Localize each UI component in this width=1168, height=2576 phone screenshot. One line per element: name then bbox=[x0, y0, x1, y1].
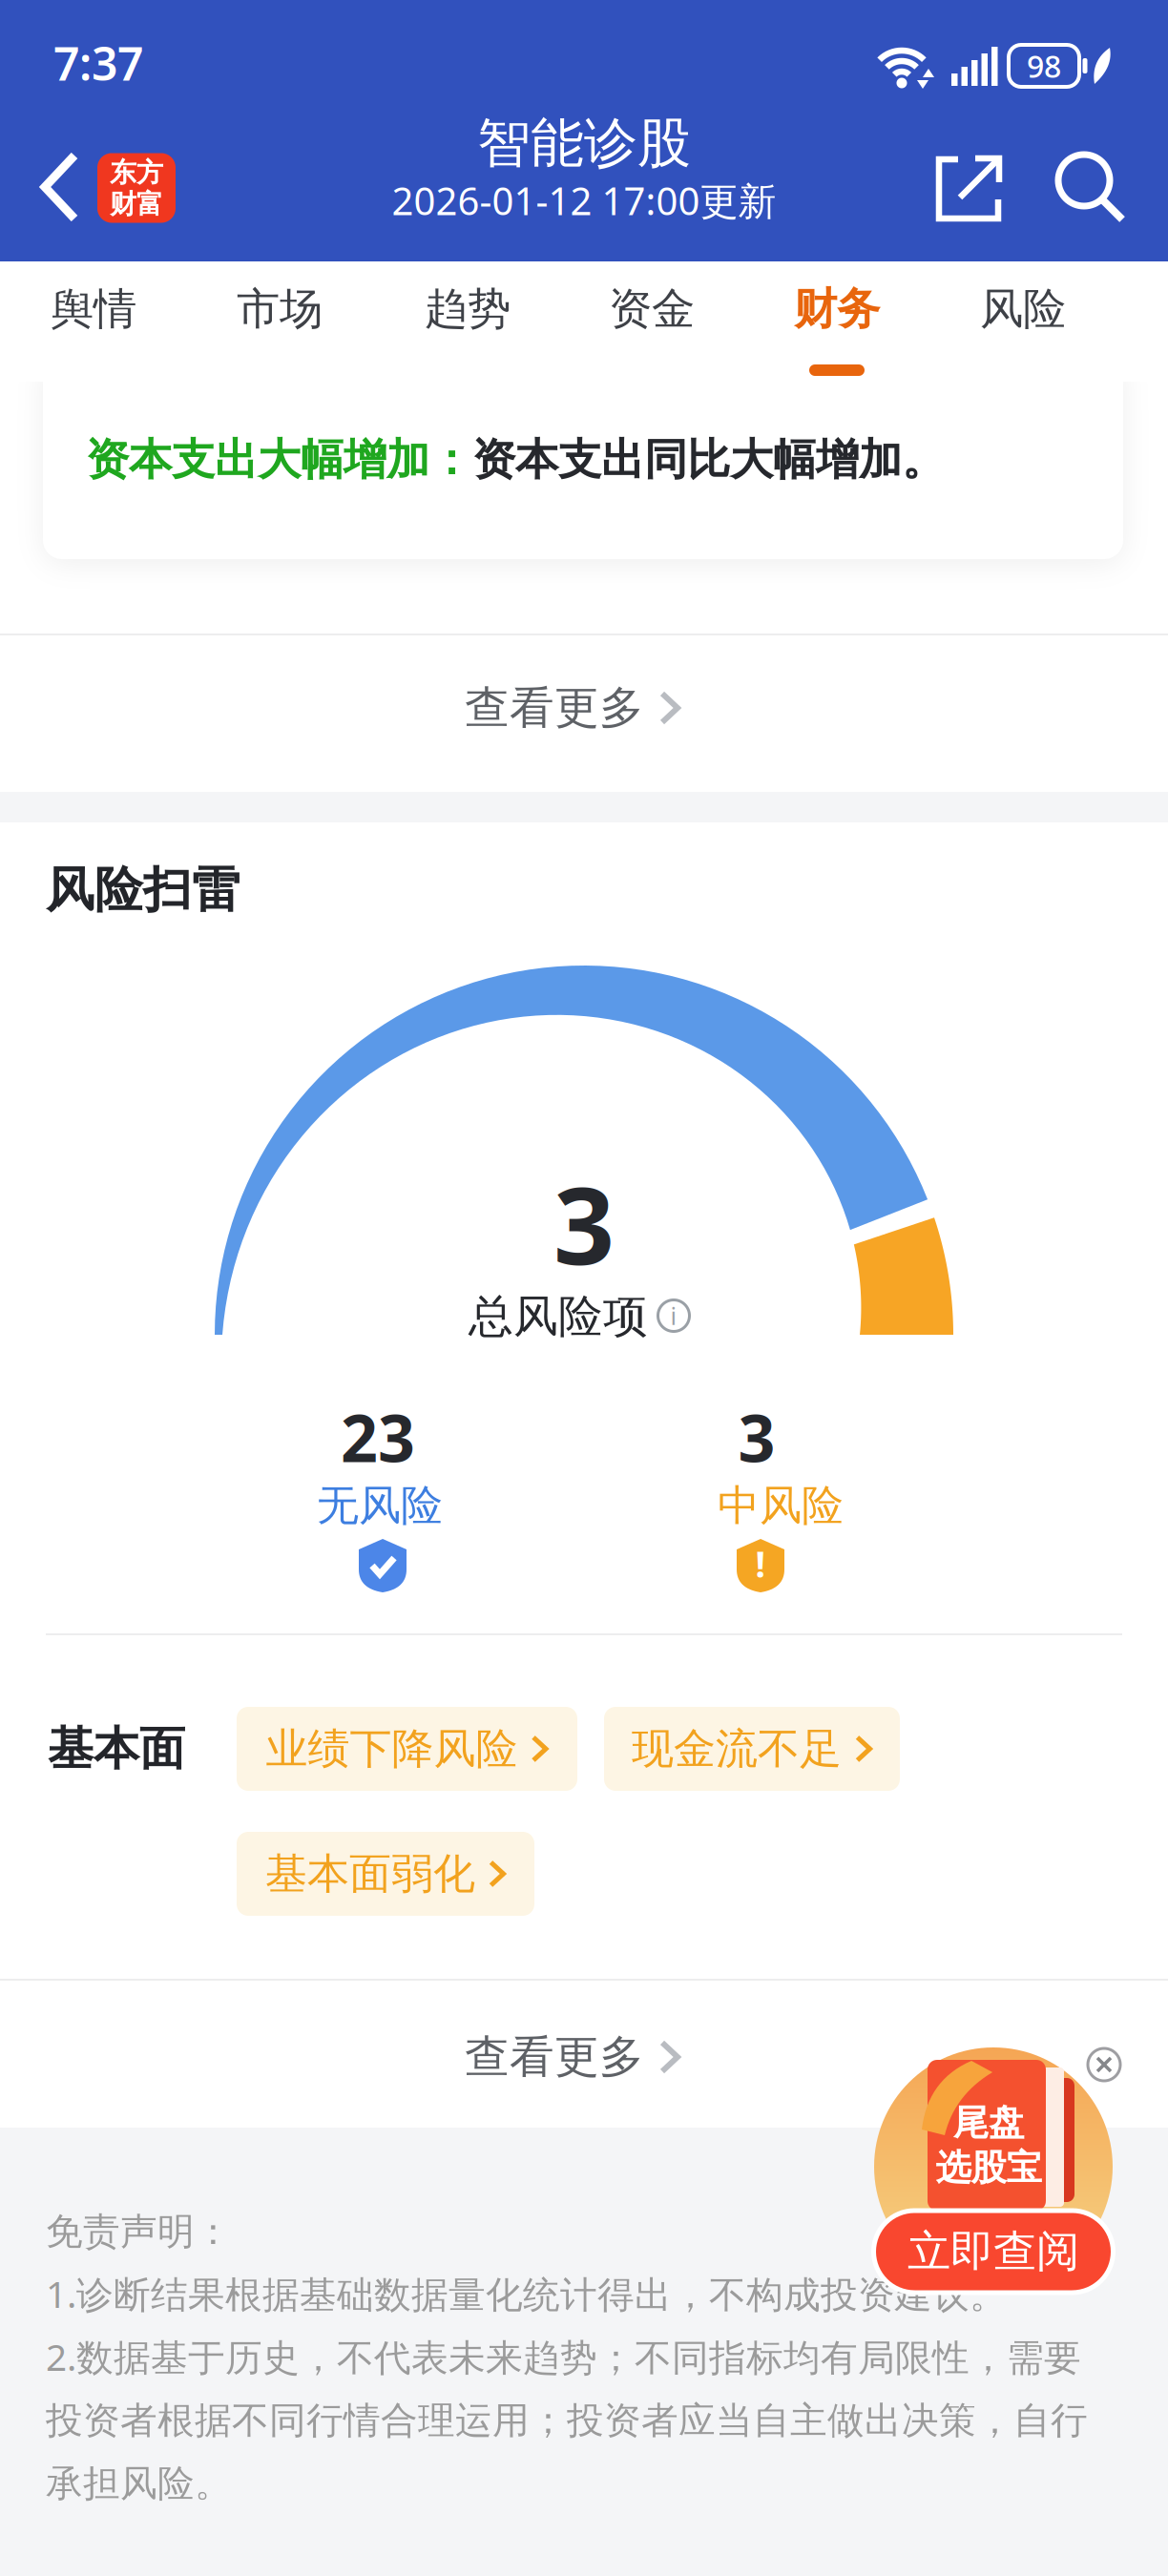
staticText: 选股宝 bbox=[936, 2146, 1042, 2190]
button[interactable]: 查看更多 bbox=[465, 2000, 680, 2114]
staticText: 资金 bbox=[609, 283, 695, 336]
button[interactable]: 基本面弱化 bbox=[237, 1832, 534, 1916]
staticText: 业绩下降风险 bbox=[266, 1723, 518, 1775]
button[interactable]: 市场 bbox=[203, 252, 356, 366]
button[interactable]: 总风险项说明 bbox=[657, 1299, 690, 1332]
button[interactable]: 东方财富 bbox=[97, 153, 176, 223]
staticText: 3 bbox=[738, 1394, 775, 1480]
button[interactable]: 立即查阅 bbox=[874, 2211, 1113, 2293]
button[interactable]: 舆情 bbox=[17, 252, 170, 366]
button[interactable]: 现金流不足 bbox=[604, 1707, 900, 1791]
staticText: 承担风险。 bbox=[46, 2461, 232, 2506]
button[interactable]: Share bbox=[937, 156, 1002, 221]
staticText: 资本支出同比大幅增加。 bbox=[472, 433, 945, 486]
button[interactable]: Back bbox=[42, 154, 78, 220]
staticText: 3 bbox=[553, 1152, 615, 1294]
staticText: 7:37 bbox=[53, 33, 143, 93]
button[interactable]: Search bbox=[1054, 151, 1127, 223]
staticText: 财务 bbox=[794, 283, 880, 336]
staticText: 中风险 bbox=[718, 1480, 844, 1531]
staticText: 立即查阅 bbox=[907, 2225, 1079, 2278]
staticText: 98 bbox=[1027, 46, 1061, 86]
staticText: 2026-01-12 17:00更新 bbox=[392, 175, 776, 226]
staticText: 基本面 bbox=[48, 1721, 185, 1777]
staticText: 1.诊断结果根据基础数据量化统计得出，不构成投资建议。 bbox=[46, 2269, 1007, 2318]
staticText: 基本面弱化 bbox=[265, 1848, 475, 1900]
staticText: 23 bbox=[341, 1394, 415, 1480]
staticText: 资本支出大幅增加： bbox=[86, 433, 472, 486]
button[interactable]: 业绩下降风险 bbox=[237, 1707, 577, 1791]
staticText: 2.数据基于历史，不代表未来趋势；不同指标均有局限性，需要 bbox=[46, 2332, 1081, 2381]
staticText: 风险扫雷 bbox=[46, 860, 240, 920]
button[interactable]: 财务 bbox=[761, 252, 913, 366]
staticText: ! bbox=[755, 1540, 766, 1587]
button[interactable]: 趋势 bbox=[391, 252, 544, 366]
staticText: 市场 bbox=[237, 283, 323, 336]
staticText: 查看更多 bbox=[465, 2030, 644, 2084]
staticText: 现金流不足 bbox=[632, 1723, 842, 1775]
staticText: 趋势 bbox=[425, 283, 511, 336]
staticText: 免责声明： bbox=[46, 2209, 232, 2254]
button[interactable]: 风险 bbox=[947, 252, 1099, 366]
staticText: i bbox=[670, 1300, 677, 1332]
button[interactable]: 资金 bbox=[575, 252, 728, 366]
staticText: 总风险项 bbox=[469, 1289, 648, 1344]
button[interactable]: 关闭 bbox=[1086, 2046, 1122, 2083]
button[interactable]: 查看更多 bbox=[465, 651, 680, 765]
staticText: 尾盘 bbox=[953, 2101, 1024, 2145]
staticText: 查看更多 bbox=[465, 681, 644, 735]
staticText: 舆情 bbox=[51, 283, 136, 336]
staticText: 东方 bbox=[110, 156, 163, 189]
staticText: 智能诊股 bbox=[477, 110, 691, 176]
staticText: 投资者根据不同行情合理运用；投资者应当自主做出决策，自行 bbox=[46, 2398, 1088, 2443]
staticText: 风险 bbox=[980, 283, 1066, 336]
staticText: 财富 bbox=[110, 188, 163, 221]
staticText: 无风险 bbox=[317, 1480, 443, 1531]
